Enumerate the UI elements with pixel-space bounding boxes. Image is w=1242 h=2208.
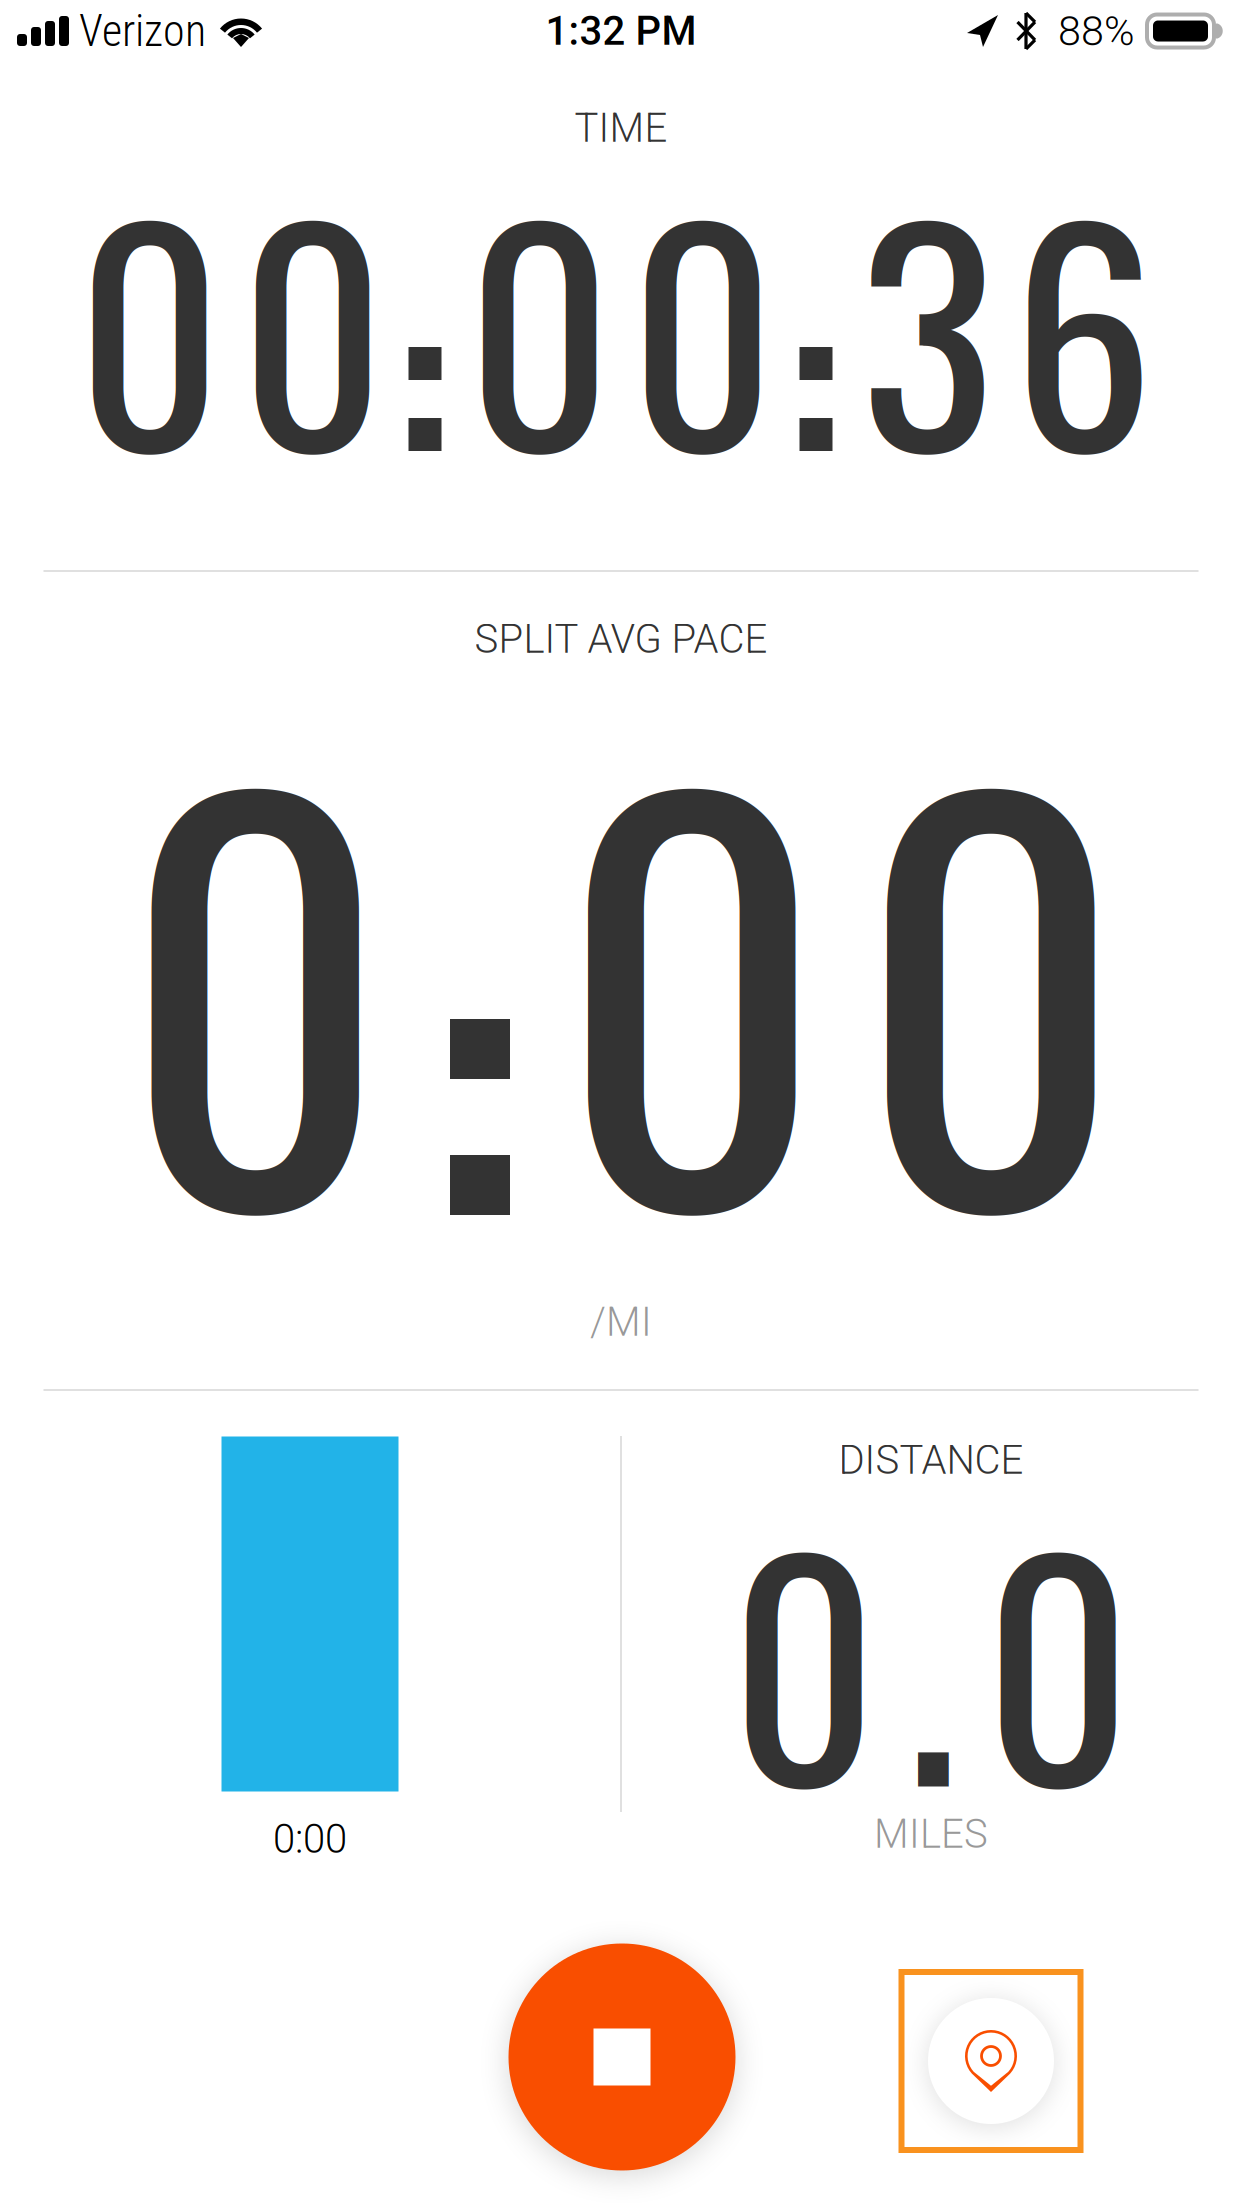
staticText: Verizon — [79, 5, 206, 57]
staticText: 0:00 — [273, 1816, 347, 1862]
staticText: MILES — [874, 1811, 988, 1857]
button[interactable]: Stop workout — [508, 1943, 735, 2170]
staticText: 00 — [466, 114, 775, 533]
button[interactable]: Show map — [898, 1969, 1083, 2153]
staticText: 00 — [76, 114, 385, 533]
staticText: 36 — [860, 114, 1154, 533]
staticText: TIME — [574, 105, 667, 151]
staticText: SPLIT AVG PACE — [474, 616, 767, 662]
staticText: DISTANCE — [838, 1437, 1023, 1483]
staticText: 0.0 — [730, 1445, 1132, 1869]
staticText: /MI — [590, 1299, 652, 1345]
staticText: 00 — [558, 594, 1124, 1360]
staticText: 88% — [1058, 7, 1135, 55]
staticText: 1:32 PM — [545, 8, 696, 54]
staticText: 0 — [121, 594, 388, 1360]
